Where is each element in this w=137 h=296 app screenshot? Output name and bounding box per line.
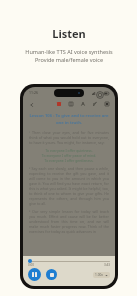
staticText: ¹ Then close your eyes, and for five min… <box>29 130 109 145</box>
staticText: 3:43 <box>104 263 110 267</box>
staticText: Human-like TTS AI voice synthesis Provid… <box>25 48 113 64</box>
button[interactable]: Text size <box>79 100 87 108</box>
button[interactable]: Menu <box>103 100 111 108</box>
staticText: 0:00 <box>28 263 34 267</box>
button[interactable]: Stop <box>46 269 57 280</box>
button[interactable]: Seek <box>28 259 110 263</box>
button[interactable]: Pause <box>28 268 41 281</box>
button[interactable]: Highlight <box>55 100 63 108</box>
staticText: 11:26 <box>29 90 38 95</box>
staticText: 1.00x <box>95 273 104 277</box>
staticText: ³ Our very simple lesson for today will … <box>29 209 109 234</box>
button[interactable]: Share <box>91 100 99 108</box>
staticText: Lesson 106 : To give and to receive are … <box>29 113 109 125</box>
button[interactable]: 1.00x <box>93 272 110 278</box>
staticText: To everyone I offer quietness. To everyo… <box>34 148 104 163</box>
staticText: ² Say each one slowly, and then pause a … <box>29 166 109 206</box>
button[interactable]: Back <box>27 100 36 109</box>
staticText: Listen <box>52 26 86 41</box>
button[interactable]: Bookmark <box>67 100 75 108</box>
